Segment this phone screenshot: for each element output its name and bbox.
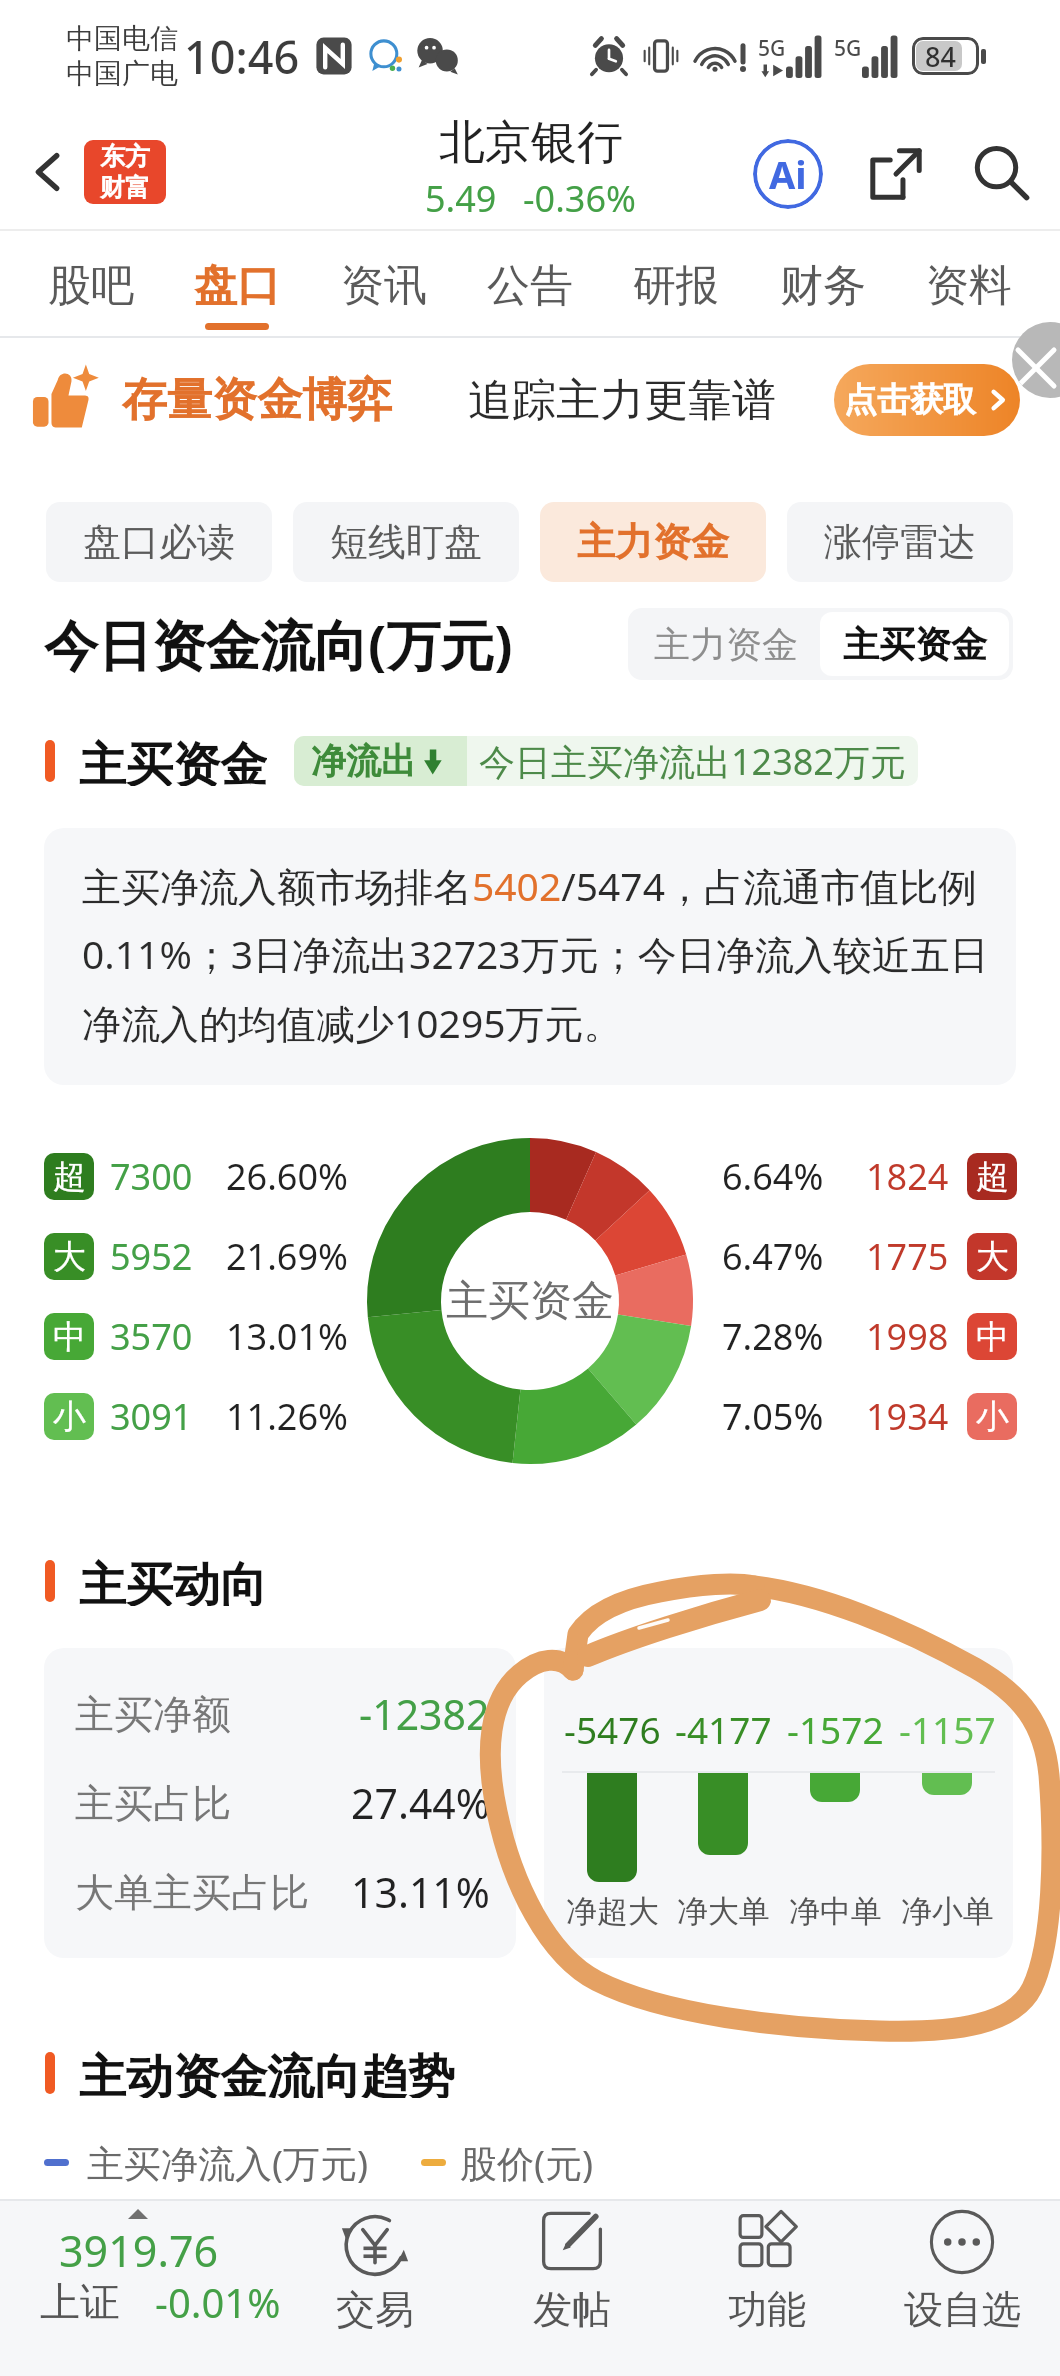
button[interactable]: 功能 xyxy=(669,2199,865,2376)
staticText: 主力资金 xyxy=(654,622,798,667)
staticText: 盘口 xyxy=(194,259,280,313)
staticText: 财务 xyxy=(780,259,866,313)
staticText: 主买净流入(万元) xyxy=(87,2137,369,2188)
staticText: 主买动向 xyxy=(79,1556,267,1606)
button[interactable]: 主买资金 xyxy=(820,612,1009,676)
staticText: 7300 xyxy=(110,1152,193,1201)
staticText: 5.49 xyxy=(425,174,497,223)
staticText: -1157 xyxy=(899,1704,996,1754)
staticText: 净小单 xyxy=(901,1892,994,1931)
staticText: 超 xyxy=(53,1156,86,1198)
staticText: 中国广电 xyxy=(66,56,178,91)
staticText: 资料 xyxy=(926,259,1012,313)
staticText: 11.26% xyxy=(226,1392,348,1441)
staticText: 27.44% xyxy=(351,1775,490,1831)
staticText: 21.69% xyxy=(226,1232,348,1281)
button[interactable]: 关闭 xyxy=(1012,322,1060,398)
staticText: 大单主买占比 xyxy=(75,1868,309,1917)
staticText: 股价(元) xyxy=(460,2137,594,2188)
staticText: 发帖 xyxy=(533,2285,611,2334)
button[interactable]: 东方 xyxy=(84,140,166,204)
staticText: 5952 xyxy=(110,1232,193,1281)
button[interactable]: 涨停雷达 xyxy=(787,502,1013,582)
button[interactable]: 资讯 xyxy=(341,231,427,330)
staticText: 3919.76 xyxy=(59,2221,219,2280)
staticText: 盘口必读 xyxy=(83,518,235,566)
button[interactable]: 分享 xyxy=(857,135,935,213)
staticText: 交易 xyxy=(336,2285,414,2334)
staticText: 7.28% xyxy=(722,1312,824,1361)
button[interactable]: 主买净流入额市场排名5402/5474，占流通市值比例0.11%；3日净流出32… xyxy=(44,828,1016,1085)
button[interactable]: 主买净额 xyxy=(44,1648,516,1958)
staticText: 股吧 xyxy=(48,259,134,313)
staticText: 6.47% xyxy=(722,1232,824,1281)
staticText: 主买资金 xyxy=(79,736,267,786)
staticText: 84 xyxy=(925,38,956,75)
staticText: -1572 xyxy=(787,1704,884,1754)
staticText: 净中单 xyxy=(789,1892,882,1931)
staticText: 7.05% xyxy=(722,1392,824,1441)
staticText: 主动资金流向趋势 xyxy=(79,2048,455,2098)
button[interactable]: 资料 xyxy=(926,231,1012,330)
staticText: 大 xyxy=(53,1236,86,1278)
staticText: 主买占比 xyxy=(75,1779,231,1828)
staticText: 上证 xyxy=(40,2277,120,2327)
button[interactable]: 股吧 xyxy=(48,231,134,330)
staticText: 26.60% xyxy=(226,1152,348,1201)
staticText: 1934 xyxy=(866,1392,949,1441)
staticText: 中 xyxy=(53,1316,86,1358)
staticText: -4177 xyxy=(675,1704,772,1754)
button[interactable]: 点击获取 xyxy=(834,364,1020,436)
staticText: 净大单 xyxy=(677,1892,770,1931)
button[interactable]: 短线盯盘 xyxy=(293,502,519,582)
staticText: 财富 xyxy=(100,172,150,203)
button[interactable]: 主力资金 xyxy=(540,502,766,582)
button[interactable]: 研报 xyxy=(633,231,719,330)
staticText: 点击获取 xyxy=(844,379,976,421)
staticText: 大 xyxy=(976,1236,1009,1278)
staticText: 中 xyxy=(976,1316,1009,1358)
staticText: 北京银行 xyxy=(439,114,623,172)
button[interactable]: -5476 xyxy=(544,1648,1013,1958)
staticText: -5476 xyxy=(564,1704,661,1754)
staticText: -0.36% xyxy=(523,174,636,223)
staticText: 追踪主力更靠谱 xyxy=(468,373,776,428)
staticText: 东方 xyxy=(100,141,150,172)
staticText: -0.01% xyxy=(155,2275,281,2329)
staticText: 小 xyxy=(976,1396,1009,1438)
button[interactable]: 财务 xyxy=(780,231,866,330)
staticText: 中国电信 xyxy=(66,21,178,56)
staticText: 公告 xyxy=(487,259,573,313)
staticText: Ai xyxy=(769,148,807,200)
staticText: 1998 xyxy=(866,1312,949,1361)
staticText: 资讯 xyxy=(341,259,427,313)
staticText: 5G xyxy=(834,34,862,63)
staticText: 短线盯盘 xyxy=(330,518,482,566)
staticText: 净超大 xyxy=(566,1892,659,1931)
staticText: 主买资金 xyxy=(446,1275,614,1328)
staticText: 研报 xyxy=(633,259,719,313)
staticText: 涨停雷达 xyxy=(824,518,976,566)
staticText: -12382 xyxy=(359,1686,490,1742)
staticText: 3091 xyxy=(110,1392,193,1441)
button[interactable]: 交易 xyxy=(277,2199,473,2376)
button[interactable]: 发帖 xyxy=(474,2199,670,2376)
staticText: 今日主买净流出12382万元 xyxy=(479,737,906,786)
staticText: 主买净额 xyxy=(75,1690,231,1739)
staticText: 今日资金流向(万元) xyxy=(44,607,513,681)
button[interactable]: 搜索 xyxy=(962,135,1040,213)
staticText: 主买资金 xyxy=(843,622,987,667)
button[interactable]: 盘口 xyxy=(194,231,280,330)
button[interactable]: 3919.76 xyxy=(0,2199,277,2376)
button[interactable]: 公告 xyxy=(487,231,573,330)
staticText: 功能 xyxy=(728,2285,806,2334)
button[interactable]: 返回 xyxy=(12,136,84,208)
staticText: 主力资金 xyxy=(577,518,729,566)
button[interactable]: 设自选 xyxy=(864,2199,1060,2376)
staticText: 1824 xyxy=(866,1152,949,1201)
button[interactable]: 盘口必读 xyxy=(46,502,272,582)
button[interactable]: AI助手 xyxy=(749,135,827,213)
staticText: 13.01% xyxy=(226,1312,348,1361)
staticText: 10:46 xyxy=(184,26,300,87)
button[interactable]: 主力资金 xyxy=(628,608,824,680)
